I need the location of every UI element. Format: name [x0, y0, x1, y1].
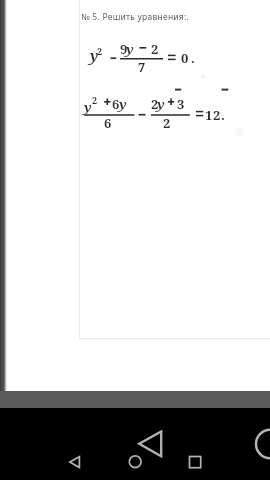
staticText: 2	[151, 40, 159, 58]
staticText: 3	[177, 95, 185, 113]
staticText: 2	[163, 114, 171, 132]
staticText: 2	[97, 45, 103, 57]
staticText: 2	[92, 94, 98, 106]
staticText: 7	[138, 58, 146, 76]
staticText: 6	[104, 114, 112, 132]
button[interactable]: Home	[113, 444, 158, 480]
staticText: 2	[213, 106, 221, 124]
staticText: № 5. Решить уравнения:.	[81, 11, 190, 23]
staticText: y	[157, 95, 165, 113]
button[interactable]: Photo of a maths exercise sheet	[0, 0, 270, 480]
staticText: .	[221, 106, 225, 124]
staticText: y	[119, 95, 127, 113]
staticText: 2	[151, 95, 159, 113]
button[interactable]: Recent apps	[172, 444, 217, 480]
staticText: .	[191, 49, 195, 67]
staticText: 6	[112, 95, 120, 113]
staticText: y	[90, 46, 99, 65]
button[interactable]: Back	[52, 444, 97, 480]
staticText: 1	[205, 106, 213, 124]
staticText: y	[126, 40, 134, 58]
staticText: y	[84, 98, 92, 116]
staticText: 0	[181, 49, 189, 67]
staticText: 9	[120, 40, 128, 58]
